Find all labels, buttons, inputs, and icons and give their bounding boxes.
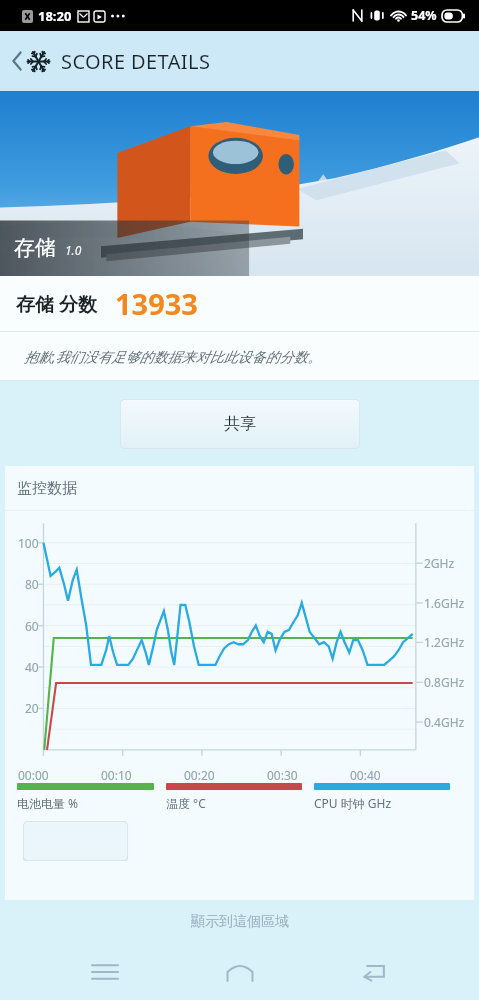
staticText: 13933 — [115, 284, 198, 323]
staticText: 80 — [25, 576, 39, 592]
button[interactable]: Details — [23, 821, 128, 861]
staticText: 20 — [25, 700, 39, 716]
button[interactable]: SCORE DETAILS — [0, 31, 479, 91]
button[interactable]: Recents — [75, 944, 135, 1000]
staticText: 1.6GHz — [424, 595, 465, 611]
staticText: 2GHz — [424, 555, 455, 571]
staticText: 存储 — [14, 235, 56, 261]
staticText: 存储 分数 — [16, 291, 97, 317]
staticText: SCORE DETAILS — [61, 48, 211, 75]
button[interactable]: Home — [210, 944, 270, 1000]
staticText: 1.2GHz — [424, 634, 465, 650]
staticText: 00:20 — [184, 767, 215, 783]
staticText: 抱歉,我们没有足够的数据来对比此设备的分数。 — [24, 347, 322, 366]
button[interactable]: Back — [344, 944, 404, 1000]
staticText: CPU 时钟 GHz — [314, 795, 392, 811]
staticText: 60 — [25, 618, 39, 634]
staticText: 00:40 — [350, 767, 381, 783]
staticText: 0.8GHz — [424, 674, 465, 690]
button[interactable]: 共享 — [120, 399, 360, 449]
staticText: 1.0 — [65, 242, 82, 258]
staticText: 00:10 — [101, 767, 132, 783]
staticText: 100 — [18, 535, 39, 551]
staticText: 00:30 — [267, 767, 298, 783]
staticText: 40 — [25, 659, 39, 675]
staticText: 共享 — [224, 414, 256, 434]
staticText: 00:00 — [18, 767, 49, 783]
staticText: 电池电量 % — [17, 795, 79, 811]
staticText: 顯示到這個區域 — [191, 913, 289, 931]
staticText: 54% — [411, 7, 437, 24]
staticText: 18:20 — [38, 7, 72, 25]
staticText: 温度 °C — [166, 795, 206, 811]
staticText: 0.4GHz — [424, 714, 465, 730]
staticText: 监控数据 — [17, 479, 77, 498]
